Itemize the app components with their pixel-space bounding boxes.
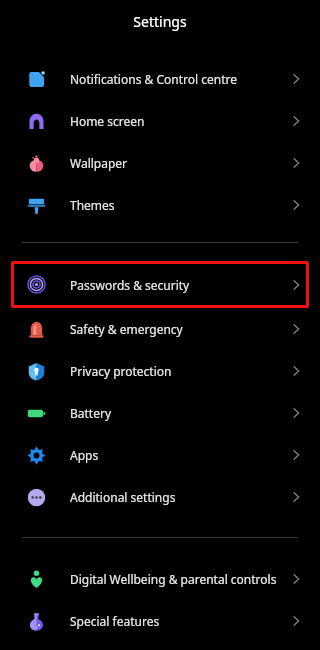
button[interactable]: Special features xyxy=(0,600,320,642)
button[interactable]: Privacy protection xyxy=(0,350,320,392)
staticText: Additional settings xyxy=(70,489,288,505)
button[interactable]: Safety & emergency xyxy=(0,308,320,350)
staticText: Home screen xyxy=(70,113,288,129)
staticText: Notifications & Control centre xyxy=(70,71,288,87)
staticText: Passwords & security xyxy=(70,277,288,293)
staticText: Wallpaper xyxy=(70,155,288,171)
button[interactable]: Apps xyxy=(0,434,320,476)
staticText: Digital Wellbeing & parental controls xyxy=(70,571,288,587)
staticText: Settings xyxy=(133,12,187,31)
button[interactable]: Notifications & Control centre xyxy=(0,58,320,100)
button[interactable]: Digital Wellbeing & parental controls xyxy=(0,558,320,600)
staticText: Safety & emergency xyxy=(70,321,288,337)
button[interactable]: Additional settings xyxy=(0,476,320,518)
staticText: Themes xyxy=(70,197,288,213)
button[interactable]: Passwords & security xyxy=(11,261,309,308)
button[interactable]: Battery xyxy=(0,392,320,434)
staticText: Apps xyxy=(70,447,288,463)
button[interactable]: Wallpaper xyxy=(0,142,320,184)
staticText: Battery xyxy=(70,405,288,421)
button[interactable]: Home screen xyxy=(0,100,320,142)
staticText: Privacy protection xyxy=(70,363,288,379)
staticText: Special features xyxy=(70,613,288,629)
button[interactable]: Themes xyxy=(0,184,320,226)
